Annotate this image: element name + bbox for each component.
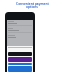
button[interactable] (8, 66, 32, 72)
staticText: options (26, 5, 38, 9)
staticText: Convenient payment (16, 2, 49, 6)
button[interactable] (8, 52, 32, 56)
button[interactable] (8, 63, 32, 65)
button[interactable] (8, 57, 32, 62)
